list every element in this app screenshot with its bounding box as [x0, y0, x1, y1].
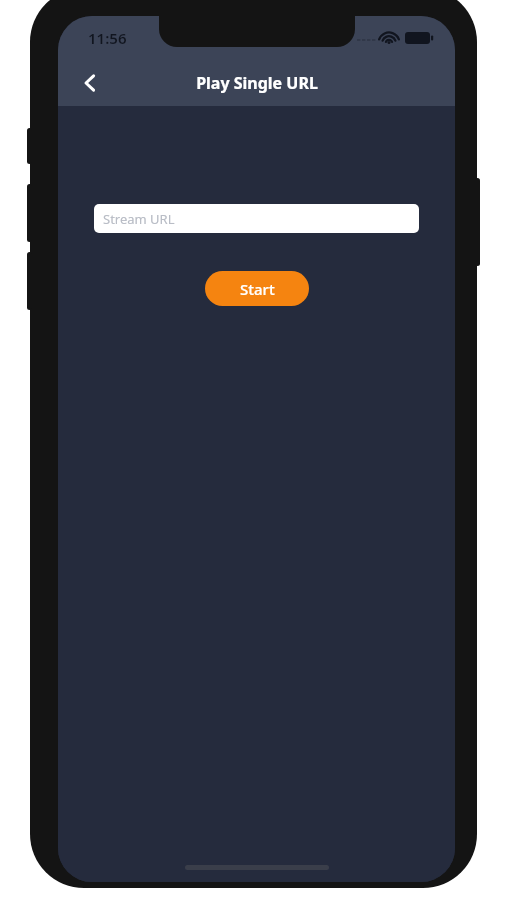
button[interactable]: Back [70, 63, 110, 103]
staticText: Start [240, 279, 275, 299]
staticText: Stream URL [103, 210, 175, 228]
staticText: Play Single URL [196, 72, 318, 94]
button[interactable]: Start [205, 271, 309, 306]
button[interactable]: Stream URL [94, 204, 419, 233]
staticText: 11:56 [88, 28, 127, 48]
